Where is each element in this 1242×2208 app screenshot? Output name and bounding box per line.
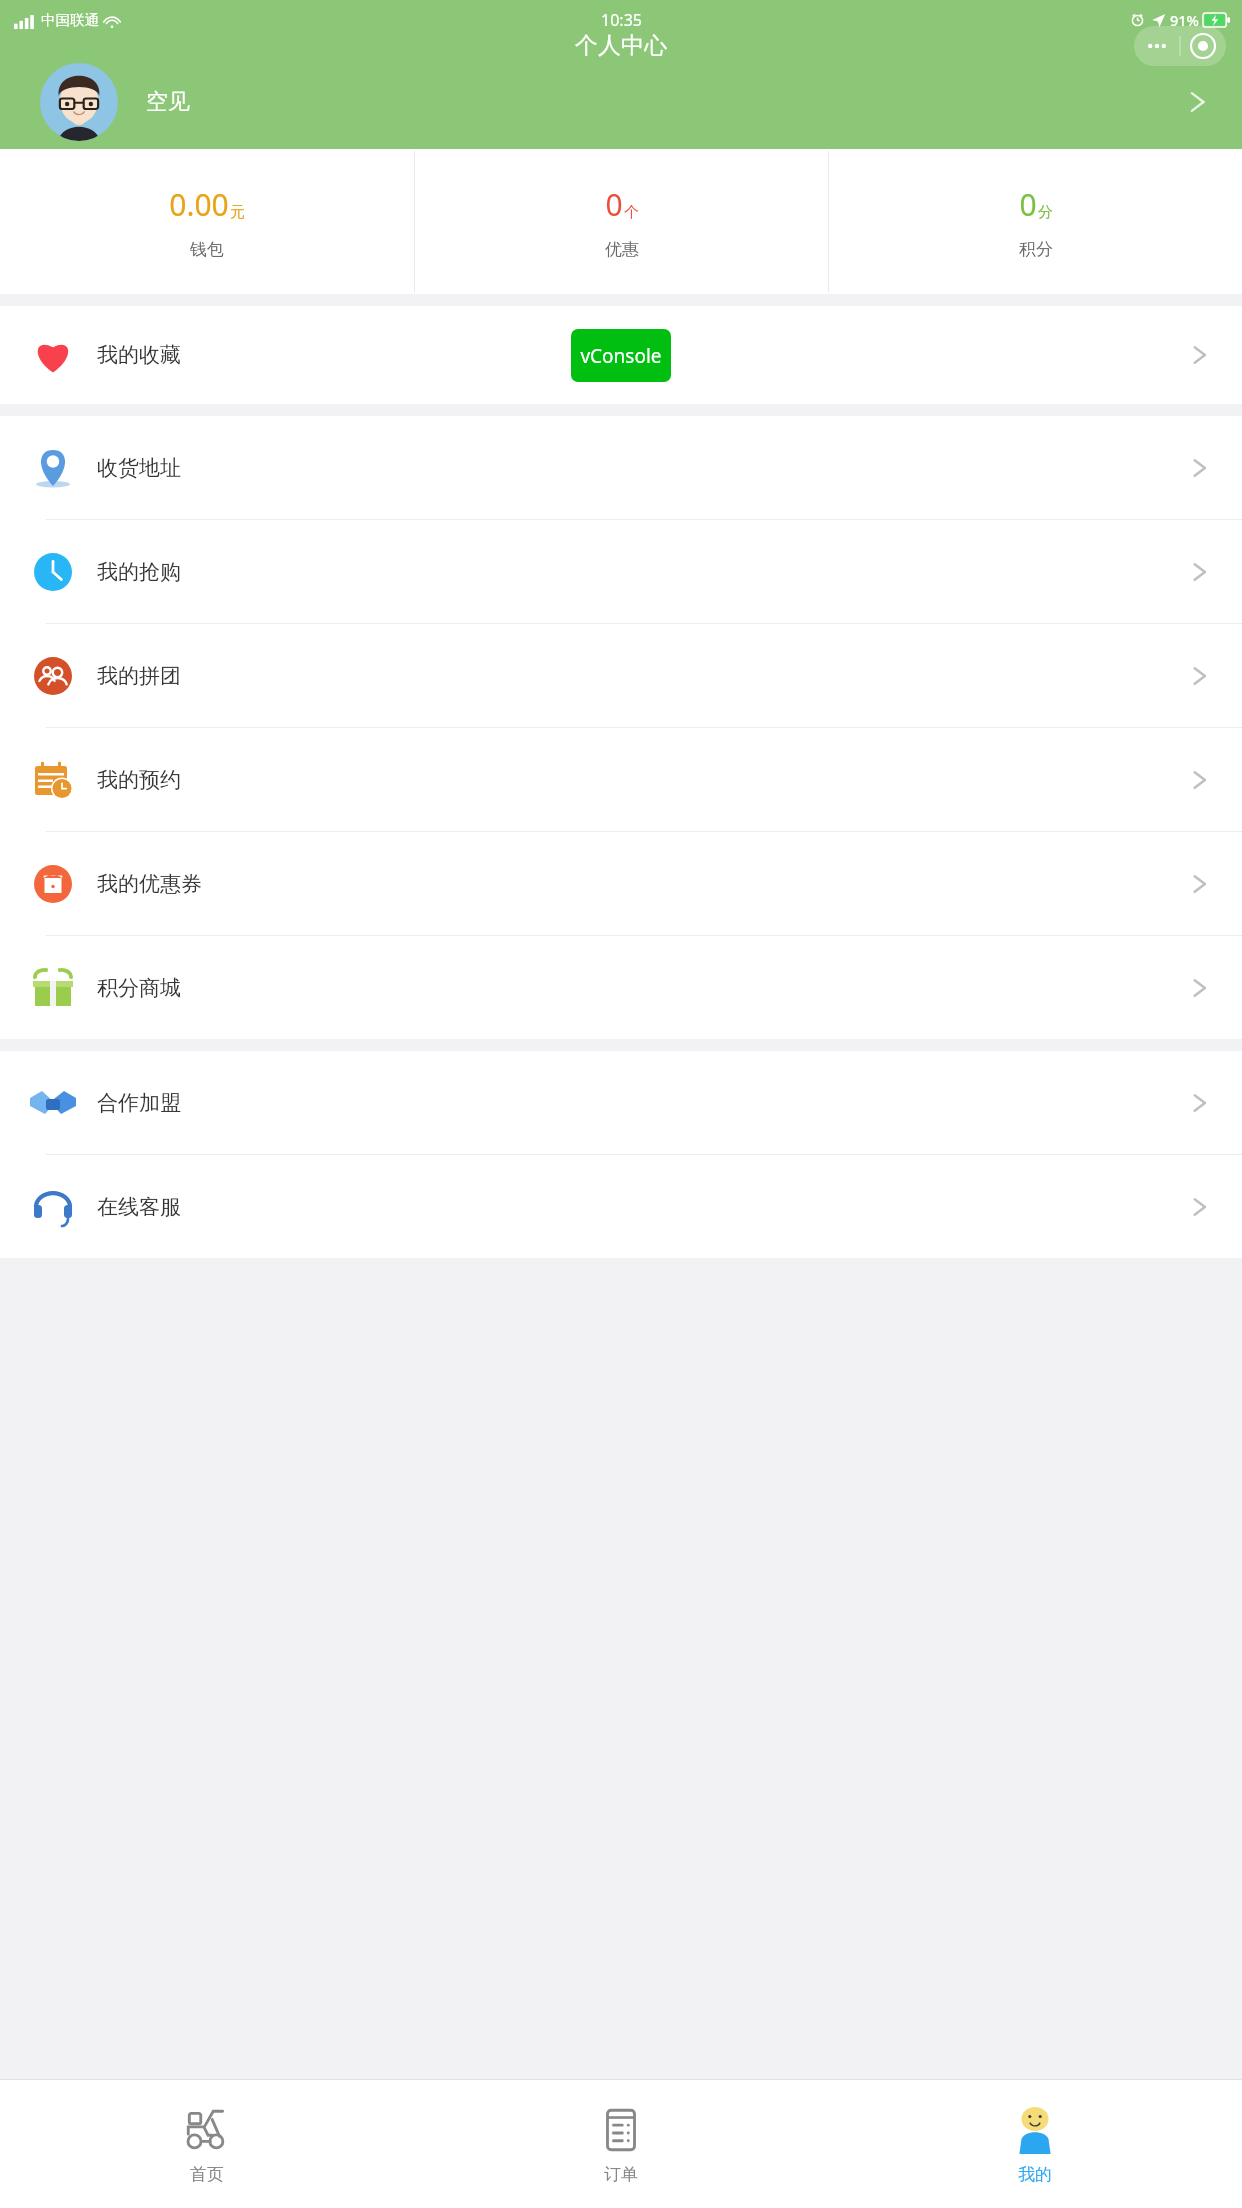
button[interactable]: 我的预约 (0, 728, 1242, 832)
staticText: 元 (230, 203, 245, 222)
button[interactable]: 我的拼团 (0, 624, 1242, 728)
staticText: 我的收藏 (97, 342, 181, 368)
button[interactable]: 空见 (0, 54, 1242, 149)
staticText: 合作加盟 (97, 1090, 181, 1116)
staticText: 空见 (146, 88, 190, 116)
button[interactable]: 我的收藏 (0, 306, 1242, 404)
staticText: 积分商城 (97, 975, 181, 1001)
button[interactable]: 订单 (414, 2080, 828, 2208)
button[interactable]: 收货地址 (0, 416, 1242, 520)
staticText: 个人中心 (575, 31, 667, 60)
button[interactable]: vConsole (571, 329, 671, 382)
staticText: 10:35 (601, 9, 642, 31)
staticText: 我的拼团 (97, 663, 181, 689)
button[interactable]: 0 (829, 149, 1242, 294)
staticText: 0 (1019, 184, 1037, 225)
button[interactable]: 0.00 (0, 149, 414, 294)
staticText: 0 (605, 184, 623, 225)
staticText: 首页 (190, 2164, 224, 2185)
button[interactable]: 我的抢购 (0, 520, 1242, 624)
staticText: 我的 (1018, 2164, 1052, 2185)
staticText: 收货地址 (97, 455, 181, 481)
staticText: 中国联通 (41, 11, 99, 29)
button[interactable]: 积分商城 (0, 936, 1242, 1039)
staticText: 我的抢购 (97, 559, 181, 585)
staticText: vConsole (580, 343, 662, 369)
staticText: 0.00 (169, 184, 229, 225)
staticText: 个 (624, 203, 639, 222)
staticText: 91% (1170, 10, 1199, 30)
staticText: 订单 (604, 2164, 638, 2185)
button[interactable]: 首页 (0, 2080, 414, 2208)
staticText: 钱包 (190, 239, 224, 260)
staticText: 我的预约 (97, 767, 181, 793)
staticText: 在线客服 (97, 1194, 181, 1220)
button[interactable]: 0 (415, 149, 828, 294)
button[interactable]: 我的 (828, 2080, 1242, 2208)
staticText: 分 (1038, 203, 1053, 222)
staticText: 优惠 (605, 239, 639, 260)
button[interactable]: 合作加盟 (0, 1051, 1242, 1155)
staticText: 我的优惠券 (97, 871, 202, 897)
button[interactable]: 在线客服 (0, 1155, 1242, 1258)
button[interactable]: 我的优惠券 (0, 832, 1242, 936)
staticText: 积分 (1019, 239, 1053, 260)
button[interactable]: Menu (1134, 26, 1226, 66)
